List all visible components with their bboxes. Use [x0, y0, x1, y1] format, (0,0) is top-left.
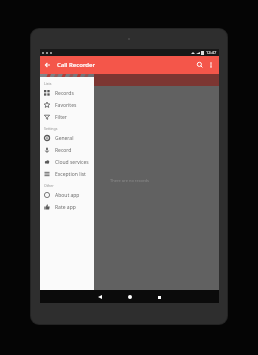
staticText: 12:47 — [206, 50, 217, 55]
staticText: About app — [55, 192, 80, 199]
staticText: Exception list — [55, 171, 86, 178]
staticText: General — [55, 135, 74, 142]
staticText: Records — [55, 90, 74, 97]
staticText: Filter — [55, 114, 67, 121]
staticText: Rate app — [55, 204, 76, 211]
button[interactable]: Back — [96, 293, 104, 301]
button[interactable]: Record — [40, 144, 94, 156]
button[interactable]: Filter — [40, 111, 94, 123]
button[interactable]: Back — [40, 56, 219, 74]
button[interactable]: Recents — [155, 293, 163, 301]
button[interactable]: Record calls toggle — [84, 65, 91, 69]
staticText: Lists — [44, 81, 52, 86]
button[interactable]: Rate app — [40, 201, 94, 213]
button[interactable]: Back — [44, 61, 52, 69]
staticText: Record calls — [52, 63, 81, 70]
button[interactable]: Favorites — [40, 99, 94, 111]
button[interactable]: Exception list — [40, 168, 94, 180]
button[interactable]: Records — [40, 87, 94, 99]
button[interactable]: Search — [196, 61, 204, 69]
staticText: Favorites — [55, 102, 77, 109]
button[interactable]: More options — [207, 61, 215, 69]
staticText: Cloud services — [55, 159, 89, 166]
staticText: Record — [55, 147, 72, 154]
staticText: Call Recorder — [57, 61, 96, 69]
staticText: Other — [44, 183, 54, 188]
button[interactable]: Record calls — [40, 56, 94, 77]
button[interactable]: Cloud services — [40, 156, 94, 168]
staticText: Settings — [44, 126, 58, 131]
button[interactable]: General — [40, 132, 94, 144]
staticText: There are no records — [110, 178, 149, 183]
button[interactable]: Home — [126, 293, 134, 301]
button[interactable]: About app — [40, 189, 94, 201]
